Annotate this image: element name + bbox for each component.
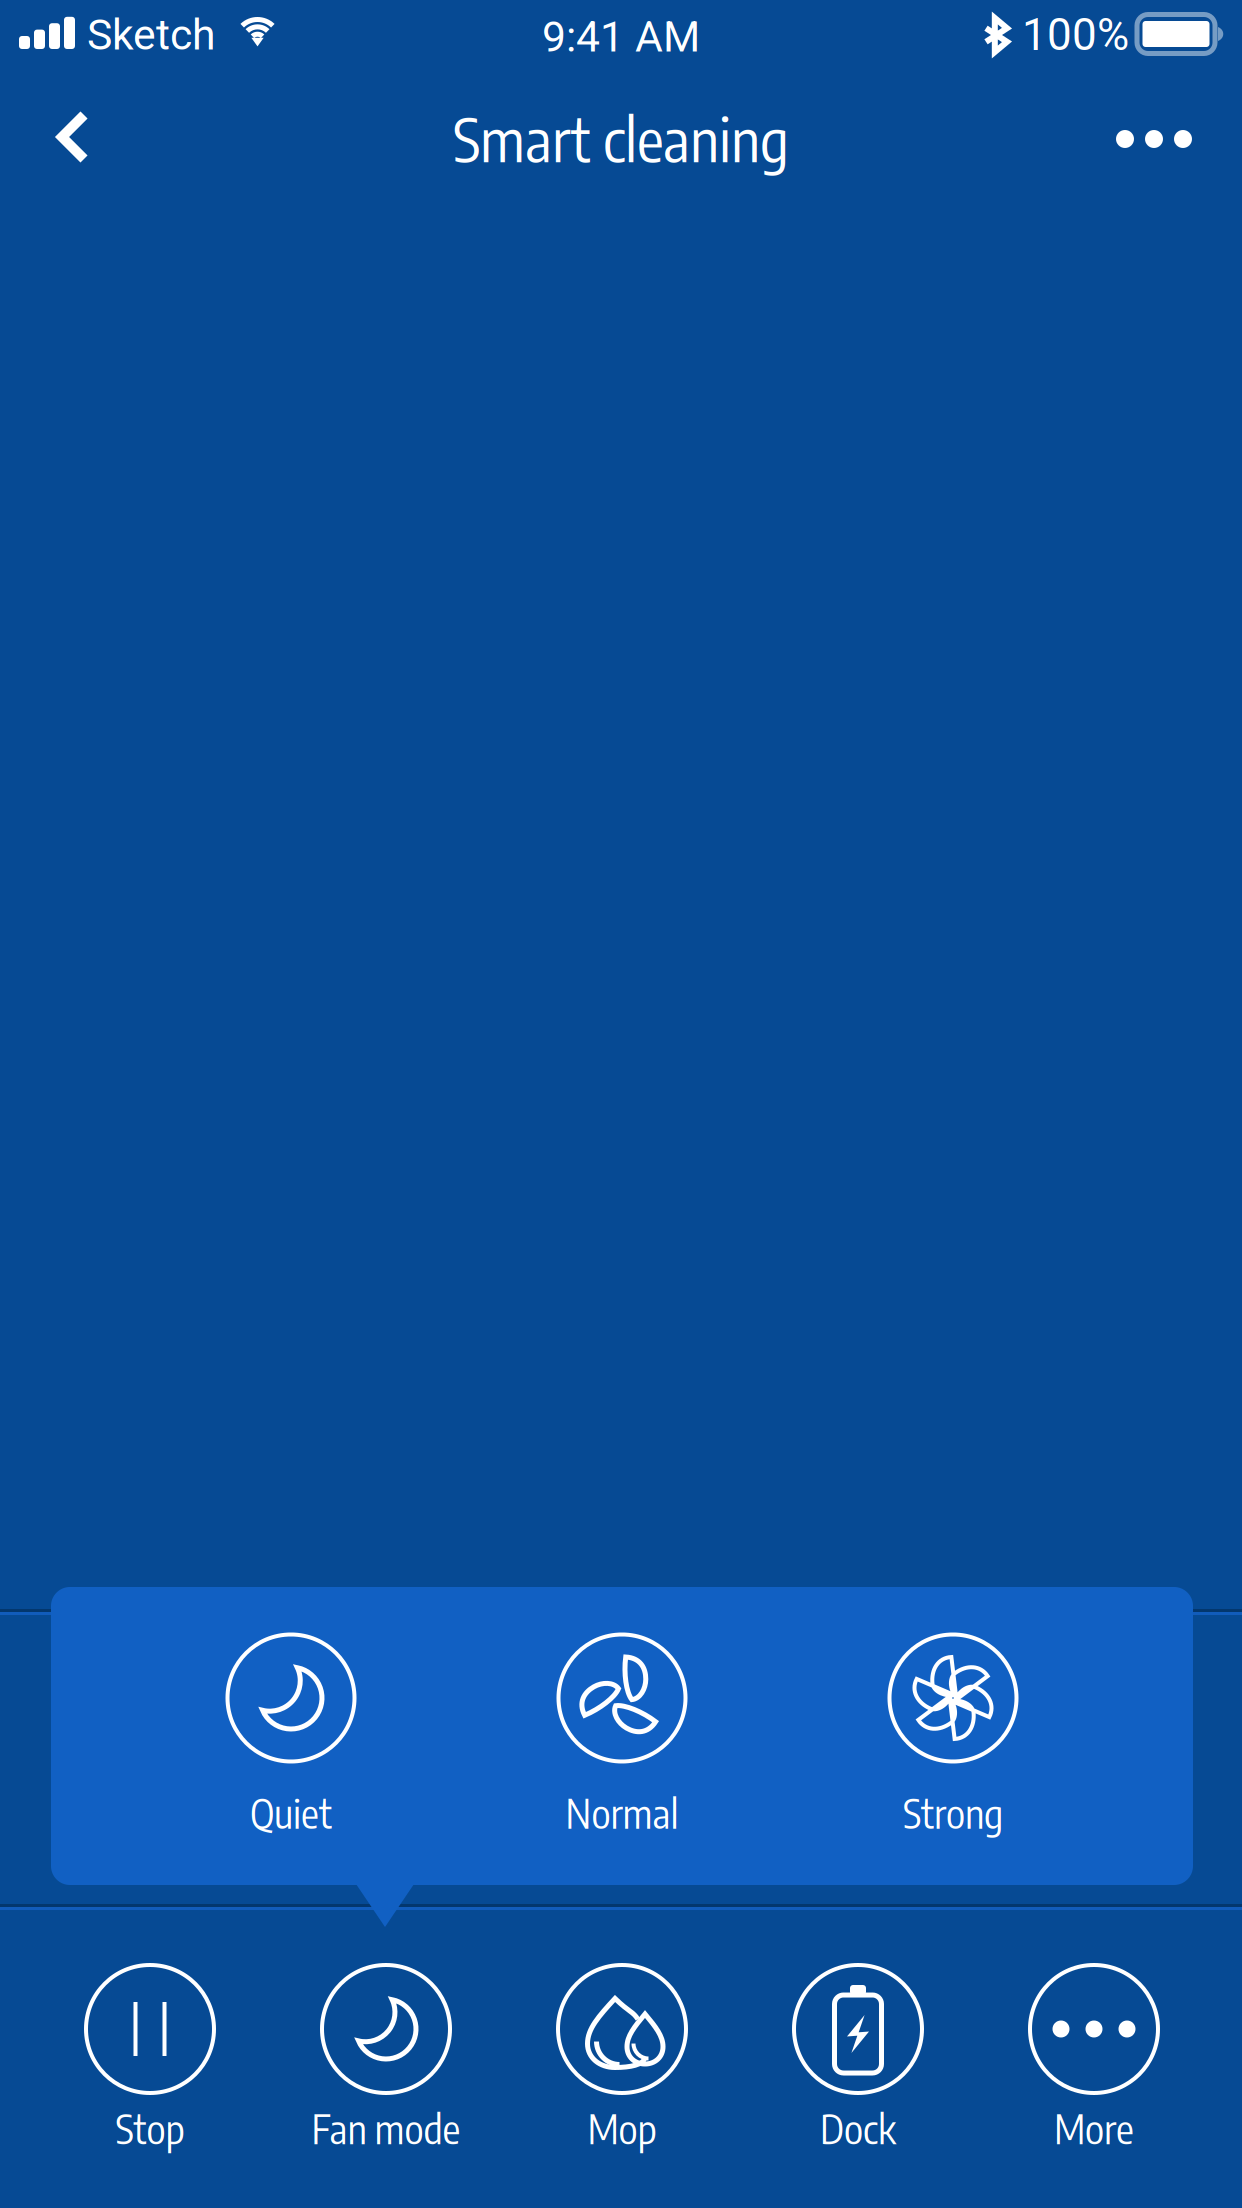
button[interactable]: Mop <box>504 1965 740 2153</box>
staticText: 100% <box>1022 9 1129 61</box>
staticText: Normal <box>565 1787 678 1837</box>
button[interactable]: Fan mode <box>268 1965 504 2153</box>
staticText: Stop <box>115 2103 184 2153</box>
staticText: Quiet <box>250 1787 332 1837</box>
staticText: More <box>1054 2103 1134 2153</box>
button[interactable]: Normal <box>456 1634 787 1837</box>
button[interactable]: More options <box>1066 64 1242 194</box>
staticText: Strong <box>903 1787 1003 1837</box>
staticText: Smart cleaning <box>453 100 789 175</box>
button[interactable]: Strong <box>787 1634 1118 1837</box>
button[interactable]: Dock <box>740 1965 976 2153</box>
button[interactable]: Stop <box>32 1965 268 2153</box>
staticText: Mop <box>587 2103 656 2153</box>
button[interactable]: More <box>976 1965 1212 2153</box>
staticText: Fan mode <box>311 2103 460 2153</box>
button[interactable]: Back <box>0 66 136 192</box>
staticText: 9:41 AM <box>542 12 700 62</box>
staticText: Dock <box>820 2103 896 2153</box>
staticText: Sketch <box>87 10 216 60</box>
button[interactable]: Quiet <box>125 1634 456 1837</box>
